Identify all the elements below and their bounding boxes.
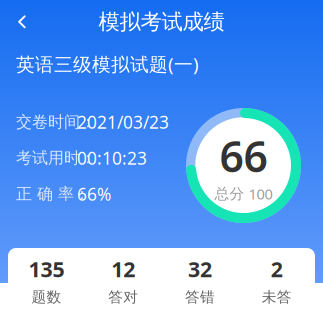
staticText: 00:10:23: [77, 146, 147, 169]
staticText: 英语三级模拟试题(一): [16, 52, 199, 76]
staticText: 考试用时：: [16, 148, 96, 168]
staticText: 题数: [31, 288, 61, 306]
staticText: 交卷时间：: [16, 112, 96, 132]
staticText: 正 确 率：: [16, 184, 90, 204]
staticText: 12: [111, 255, 135, 283]
staticText: 模拟考试成绩: [98, 9, 224, 35]
staticText: 2021/03/23: [77, 110, 169, 133]
staticText: 2: [271, 255, 283, 283]
staticText: 100: [248, 184, 272, 204]
staticText: 32: [188, 255, 212, 283]
button[interactable]: Back: [0, 0, 44, 44]
staticText: 135: [28, 255, 64, 283]
staticText: 答对: [108, 288, 138, 306]
staticText: 答错: [185, 288, 215, 306]
staticText: 总分: [214, 185, 244, 203]
staticText: 未答: [262, 288, 292, 306]
staticText: 66%: [77, 182, 111, 205]
staticText: 66: [219, 127, 267, 184]
